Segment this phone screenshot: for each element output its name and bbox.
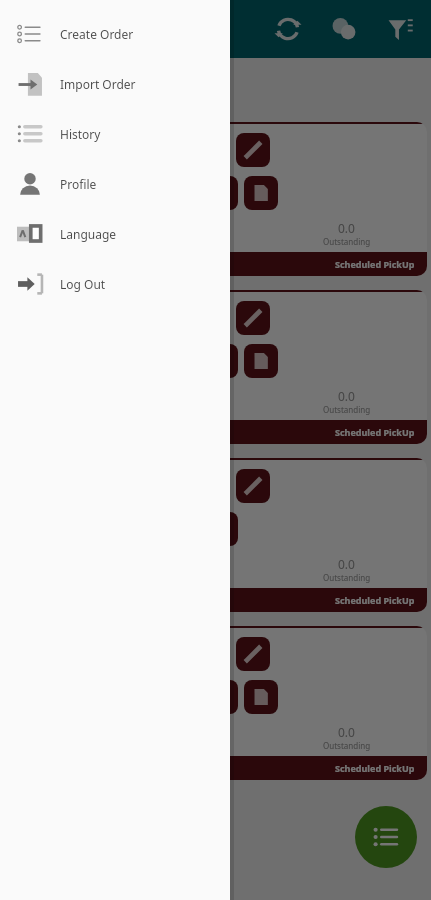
staticText: Outstanding bbox=[323, 236, 371, 247]
staticText: 0.0 bbox=[338, 388, 355, 404]
staticText: Outstanding bbox=[323, 572, 371, 583]
staticText: Log Out bbox=[60, 276, 106, 292]
staticText: Outstanding bbox=[323, 740, 371, 751]
button[interactable]: Comment bbox=[204, 680, 238, 714]
button[interactable]: Edit bbox=[236, 469, 270, 503]
button[interactable]: Import Order bbox=[0, 59, 230, 109]
staticText: 8:59 bbox=[51, 169, 77, 187]
button[interactable]: Invoice bbox=[244, 344, 278, 378]
button[interactable]: Log Out bbox=[0, 259, 230, 309]
button[interactable]: Comment bbox=[204, 176, 238, 210]
staticText: 0.0 bbox=[338, 724, 355, 740]
staticText: History bbox=[60, 126, 101, 142]
button[interactable]: Order list bbox=[355, 806, 417, 868]
button[interactable]: 12:00 bbox=[4, 626, 427, 780]
button[interactable]: Invoice bbox=[244, 680, 278, 714]
staticText: Profile bbox=[60, 176, 97, 192]
button[interactable]: Invoice bbox=[204, 512, 238, 546]
staticText: Create Order bbox=[60, 26, 134, 42]
button[interactable]: Profile bbox=[0, 159, 230, 209]
button[interactable]: Create Order bbox=[0, 9, 230, 59]
staticText: Language bbox=[60, 226, 117, 242]
button[interactable]: Edit bbox=[236, 301, 270, 335]
button[interactable]: 8:59 bbox=[4, 122, 427, 276]
button[interactable]: Refresh bbox=[269, 10, 307, 48]
staticText: 0.0 bbox=[338, 556, 355, 572]
staticText: Scheduled PickUp bbox=[335, 258, 415, 270]
button[interactable]: History bbox=[0, 109, 230, 159]
staticText: Scheduled PickUp bbox=[335, 426, 415, 438]
button[interactable]: 8:59 bbox=[4, 290, 427, 444]
button[interactable]: Edit bbox=[236, 133, 270, 167]
staticText: Outstanding bbox=[323, 404, 371, 415]
button[interactable]: 12:00 bbox=[4, 458, 427, 612]
staticText: Scheduled PickUp bbox=[335, 594, 415, 606]
button[interactable]: Filter bbox=[381, 10, 419, 48]
staticText: 0.0 bbox=[118, 69, 144, 94]
button[interactable]: Edit bbox=[236, 637, 270, 671]
button[interactable]: Comment bbox=[204, 344, 238, 378]
button[interactable]: Chat bbox=[325, 10, 363, 48]
button[interactable]: Invoice bbox=[244, 176, 278, 210]
staticText: Import Order bbox=[60, 76, 136, 92]
staticText: Scheduled PickUp bbox=[335, 762, 415, 774]
button[interactable]: Language bbox=[0, 209, 230, 259]
staticText: 0.0 bbox=[338, 220, 355, 236]
